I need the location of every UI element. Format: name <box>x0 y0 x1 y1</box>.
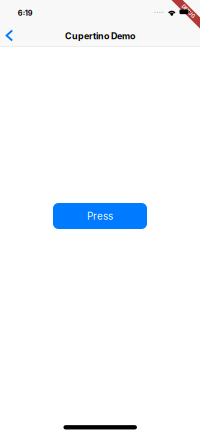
staticText: Press <box>87 210 113 222</box>
staticText: Cupertino Demo <box>65 31 135 41</box>
staticText: DEBUG <box>180 9 197 14</box>
button[interactable]: Press <box>53 203 147 229</box>
button[interactable]: Back <box>1 24 18 47</box>
staticText: 6:19 <box>18 9 33 17</box>
